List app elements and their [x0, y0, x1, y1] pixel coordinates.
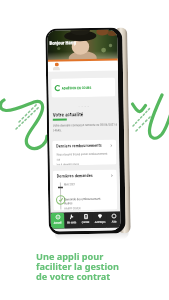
staticText: ADHÉSION EN COURS: [60, 86, 92, 90]
staticText: Votre actualité: [53, 111, 84, 118]
staticText: Bonjour Harry: [49, 40, 76, 47]
staticText: HARRY COVER: [64, 206, 81, 209]
staticText: Demande de remboursement. Autres: [64, 197, 110, 205]
button[interactable]: Dernières demandes: [53, 169, 117, 211]
staticText: Ma santé: [67, 221, 77, 224]
button[interactable]: Avantages: [92, 212, 107, 228]
staticText: Nous n'avons trouvé aucun remboursement …: [56, 152, 110, 165]
staticText: Dernières demandes: [57, 173, 93, 178]
staticText: Derniers remboursements: [56, 143, 102, 149]
button[interactable]: ADHÉSION EN COURS: [51, 77, 115, 98]
staticText: Accueil: [54, 221, 62, 225]
button[interactable]: Contrat: [78, 212, 93, 228]
staticText: Aide: [112, 220, 117, 224]
staticText: Avantages: [95, 221, 106, 224]
button[interactable]: Aide: [106, 211, 121, 228]
button[interactable]: Profil: [55, 62, 59, 67]
staticText: MAI 2021: [64, 182, 76, 186]
staticText: Une appli pour faciliter la gestion de v…: [36, 250, 119, 282]
button[interactable]: Derniers remboursements: [52, 139, 117, 166]
button[interactable]: Ma santé: [64, 212, 79, 228]
staticText: Votre dernière connexion remonte au 05/0…: [53, 122, 118, 133]
button[interactable]: Accueil: [50, 212, 65, 229]
staticText: Contrat: [82, 221, 90, 224]
